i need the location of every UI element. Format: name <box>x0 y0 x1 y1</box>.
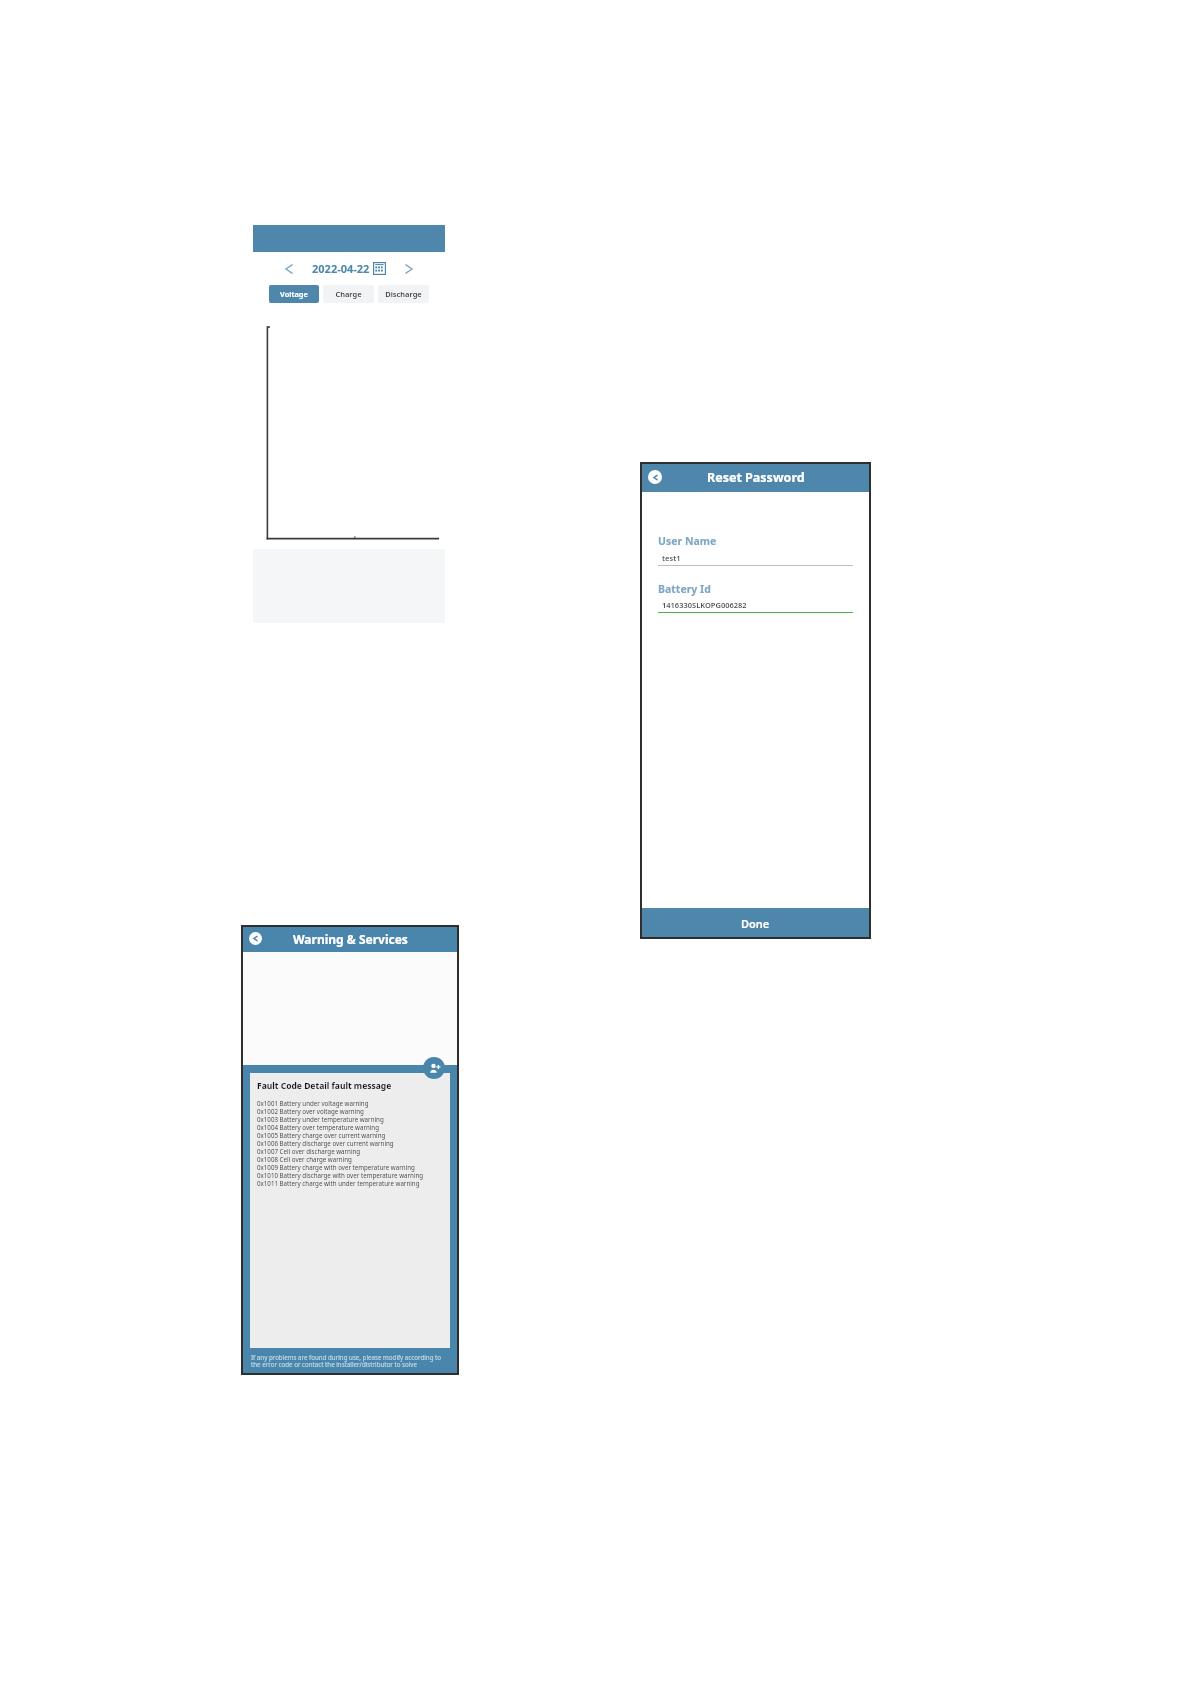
staticText: 0x1003 Battery under temperature warning <box>257 1115 384 1123</box>
button[interactable]: Previous day <box>281 261 297 277</box>
button[interactable]: Next day <box>401 261 417 277</box>
button[interactable]: Charge <box>323 285 374 303</box>
button[interactable]: Done <box>640 908 871 939</box>
staticText: If any problems are found during use, pl… <box>251 1353 449 1369</box>
staticText: Reset Password <box>707 469 805 486</box>
staticText: Discharge <box>385 289 422 299</box>
staticText: 1416330SLKOPG006282 <box>662 600 747 610</box>
staticText: 0x1007 Cell over discharge warning <box>257 1147 361 1155</box>
button[interactable]: Contact service <box>423 1057 445 1079</box>
staticText: Done <box>741 916 770 931</box>
staticText: test1 <box>662 553 681 563</box>
staticText: 0x1008 Cell over charge warning <box>257 1155 352 1163</box>
staticText: 0x1011 Battery charge with under tempera… <box>257 1179 420 1187</box>
staticText: Battery Id <box>658 582 711 596</box>
staticText: Voltage <box>280 289 308 299</box>
staticText: 0x1009 Battery charge with over temperat… <box>257 1163 415 1171</box>
staticText: 0x1006 Battery discharge over current wa… <box>257 1139 394 1147</box>
staticText: User Name <box>658 534 717 548</box>
staticText: 0x1010 Battery discharge with over tempe… <box>257 1171 424 1179</box>
button[interactable]: Pick date <box>373 262 386 275</box>
button[interactable]: Discharge <box>378 285 429 303</box>
button[interactable]: test1 <box>658 553 853 566</box>
staticText: Charge <box>335 289 362 299</box>
staticText: 0x1001 Battery under voltage warning <box>257 1099 369 1107</box>
staticText: 2022-04-22 <box>312 261 370 276</box>
staticText: Fault Code Detail fault message <box>257 1080 392 1092</box>
button[interactable]: Back <box>648 470 662 484</box>
staticText: 0x1004 Battery over temperature warning <box>257 1123 379 1131</box>
staticText: 0x1002 Battery over voltage warning <box>257 1107 364 1115</box>
button[interactable]: Back <box>249 932 262 945</box>
button[interactable]: Voltage <box>269 285 319 303</box>
staticText: Warning & Services <box>293 931 408 947</box>
button[interactable]: 1416330SLKOPG006282 <box>658 600 853 613</box>
staticText: 0x1005 Battery charge over current warni… <box>257 1131 386 1139</box>
